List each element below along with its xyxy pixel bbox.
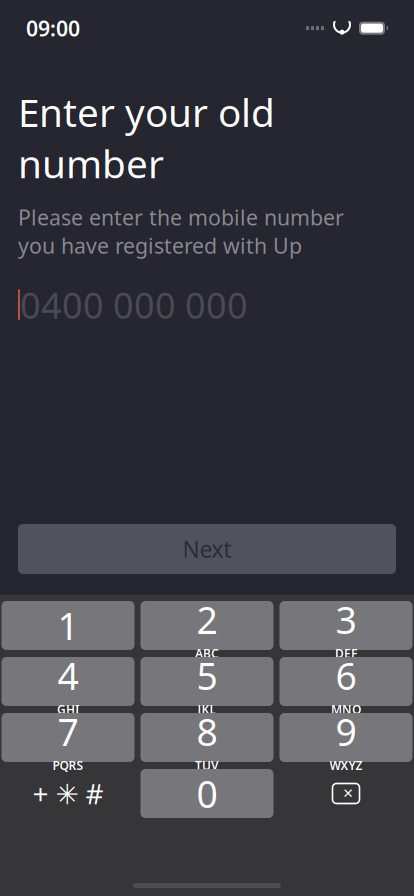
button[interactable]: 9 [279, 713, 412, 762]
staticText: 9 [335, 707, 356, 756]
staticText: JKL [197, 701, 216, 717]
button[interactable]: Next [18, 524, 396, 574]
button[interactable]: 5 [140, 657, 273, 706]
staticText: ✕ [342, 786, 353, 801]
button[interactable]: 6 [279, 657, 412, 706]
staticText: GHI [57, 701, 79, 717]
staticText: 6 [335, 651, 356, 700]
staticText: Enter your old number [18, 86, 275, 189]
staticText: 3 [335, 595, 356, 644]
staticText: 5 [196, 651, 217, 700]
button[interactable]: 4 [1, 657, 134, 706]
staticText: 4 [57, 651, 78, 700]
staticText: 0 [196, 769, 217, 818]
staticText: PQRS [52, 757, 83, 773]
button[interactable]: 7 [1, 713, 134, 762]
staticText: 0400 000 000 [20, 281, 248, 329]
staticText: Please enter the mobile number you have … [18, 203, 344, 260]
staticText: MNO [331, 701, 361, 717]
staticText: 7 [57, 707, 78, 756]
staticText: ABC [195, 645, 219, 661]
staticText: TUV [195, 757, 219, 773]
staticText: WXYZ [329, 757, 362, 773]
staticText: 8 [196, 707, 217, 756]
button[interactable]: 8 [140, 713, 273, 762]
button[interactable]: 3 [279, 601, 412, 650]
button[interactable]: 0 [140, 769, 273, 818]
staticText: DEF [335, 645, 357, 661]
button[interactable]: Delete [279, 769, 412, 818]
button[interactable]: Plus, star and hash [1, 769, 134, 818]
staticText: 09:00 [26, 14, 80, 42]
staticText: 2 [196, 595, 217, 644]
staticText: Next [182, 534, 231, 564]
staticText: + ✳ # [32, 775, 103, 812]
button[interactable]: 1 [1, 601, 134, 650]
staticText: 1 [57, 601, 78, 650]
button[interactable]: 2 [140, 601, 273, 650]
